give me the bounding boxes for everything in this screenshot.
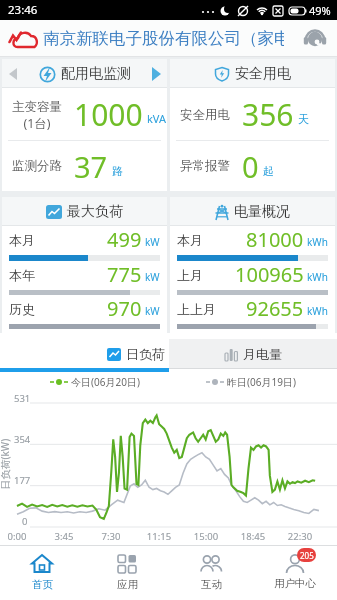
staticText: 用户中心 [274, 577, 316, 590]
staticText: 15:00 [190, 530, 222, 543]
button[interactable] [303, 27, 327, 49]
button[interactable]: 最大负荷 [2, 197, 167, 333]
staticText: 日负荷(kW) [0, 438, 11, 489]
staticText: kW [145, 270, 160, 284]
staticText: 安全用电 [180, 107, 230, 123]
staticText: 最大负荷 [67, 203, 123, 221]
staticText: 37 [74, 147, 108, 186]
staticText: 互动 [201, 578, 222, 591]
staticText: 18:45 [237, 530, 269, 543]
staticText: 7:30 [95, 530, 127, 543]
staticText: 49% [309, 3, 331, 18]
staticText: kW [145, 235, 160, 249]
staticText: 356 [242, 94, 294, 135]
button[interactable]: 配用电监测 [2, 59, 167, 191]
button[interactable]: 应用 [85, 546, 169, 600]
staticText: 970 [107, 295, 142, 322]
staticText: 0 [242, 147, 259, 186]
button[interactable] [9, 68, 17, 80]
button[interactable]: 互动 [169, 546, 253, 600]
button[interactable]: 电量概况 [170, 197, 335, 333]
staticText: 上上月 [177, 301, 216, 317]
staticText: 电量概况 [234, 203, 290, 221]
staticText: kWh [307, 235, 328, 249]
button[interactable]: 安全用电 [170, 59, 335, 191]
staticText: 205 [300, 550, 314, 561]
staticText: 监测分路 [12, 158, 62, 174]
staticText: kWh [307, 304, 328, 318]
button[interactable]: 日负荷 [0, 339, 169, 368]
staticText: 354 [14, 433, 31, 446]
staticText: 92655 [246, 295, 304, 322]
staticText: 今日(06月20日) [71, 375, 140, 389]
staticText: 本月 [177, 232, 203, 248]
staticText: 81000 [246, 226, 304, 253]
staticText: 100965 [235, 261, 304, 288]
staticText: 主变容量 (1台) [12, 99, 62, 131]
staticText: 配用电监测 [61, 65, 131, 83]
staticText: 天 [298, 112, 309, 126]
staticText: 531 [14, 392, 31, 405]
staticText: 1000 [74, 94, 143, 135]
staticText: 177 [14, 474, 31, 487]
staticText: 本年 [9, 267, 35, 283]
button[interactable]: 月电量 [169, 339, 337, 368]
staticText: 安全用电 [235, 65, 291, 83]
staticText: 11:15 [143, 530, 175, 543]
staticText: 775 [107, 261, 142, 288]
staticText: 499 [107, 226, 142, 253]
staticText: kW [145, 304, 160, 318]
staticText: kWh [307, 270, 328, 284]
staticText: 上月 [177, 267, 203, 283]
staticText: 日负荷 [126, 346, 165, 362]
staticText: 路 [112, 164, 123, 178]
staticText: 应用 [117, 578, 138, 591]
button[interactable]: 首页 [0, 546, 85, 600]
staticText: 异常报警 [180, 158, 230, 174]
staticText: 22:30 [284, 530, 316, 543]
button[interactable]: 205 [253, 546, 337, 600]
staticText: 首页 [32, 578, 53, 591]
staticText: 0:00 [1, 530, 33, 543]
staticText: 昨日(06月19日) [227, 375, 296, 389]
button[interactable] [152, 67, 161, 81]
staticText: 本月 [9, 232, 35, 248]
staticText: 月电量 [243, 346, 282, 362]
staticText: 3:45 [48, 530, 80, 543]
staticText: 南京新联电子股份有限公司（家电 [43, 28, 284, 49]
staticText: 历史 [9, 301, 35, 317]
staticText: 起 [263, 164, 274, 178]
staticText: 23:46 [8, 2, 38, 18]
staticText: kVA [147, 111, 167, 126]
staticText: 0 [22, 515, 28, 528]
